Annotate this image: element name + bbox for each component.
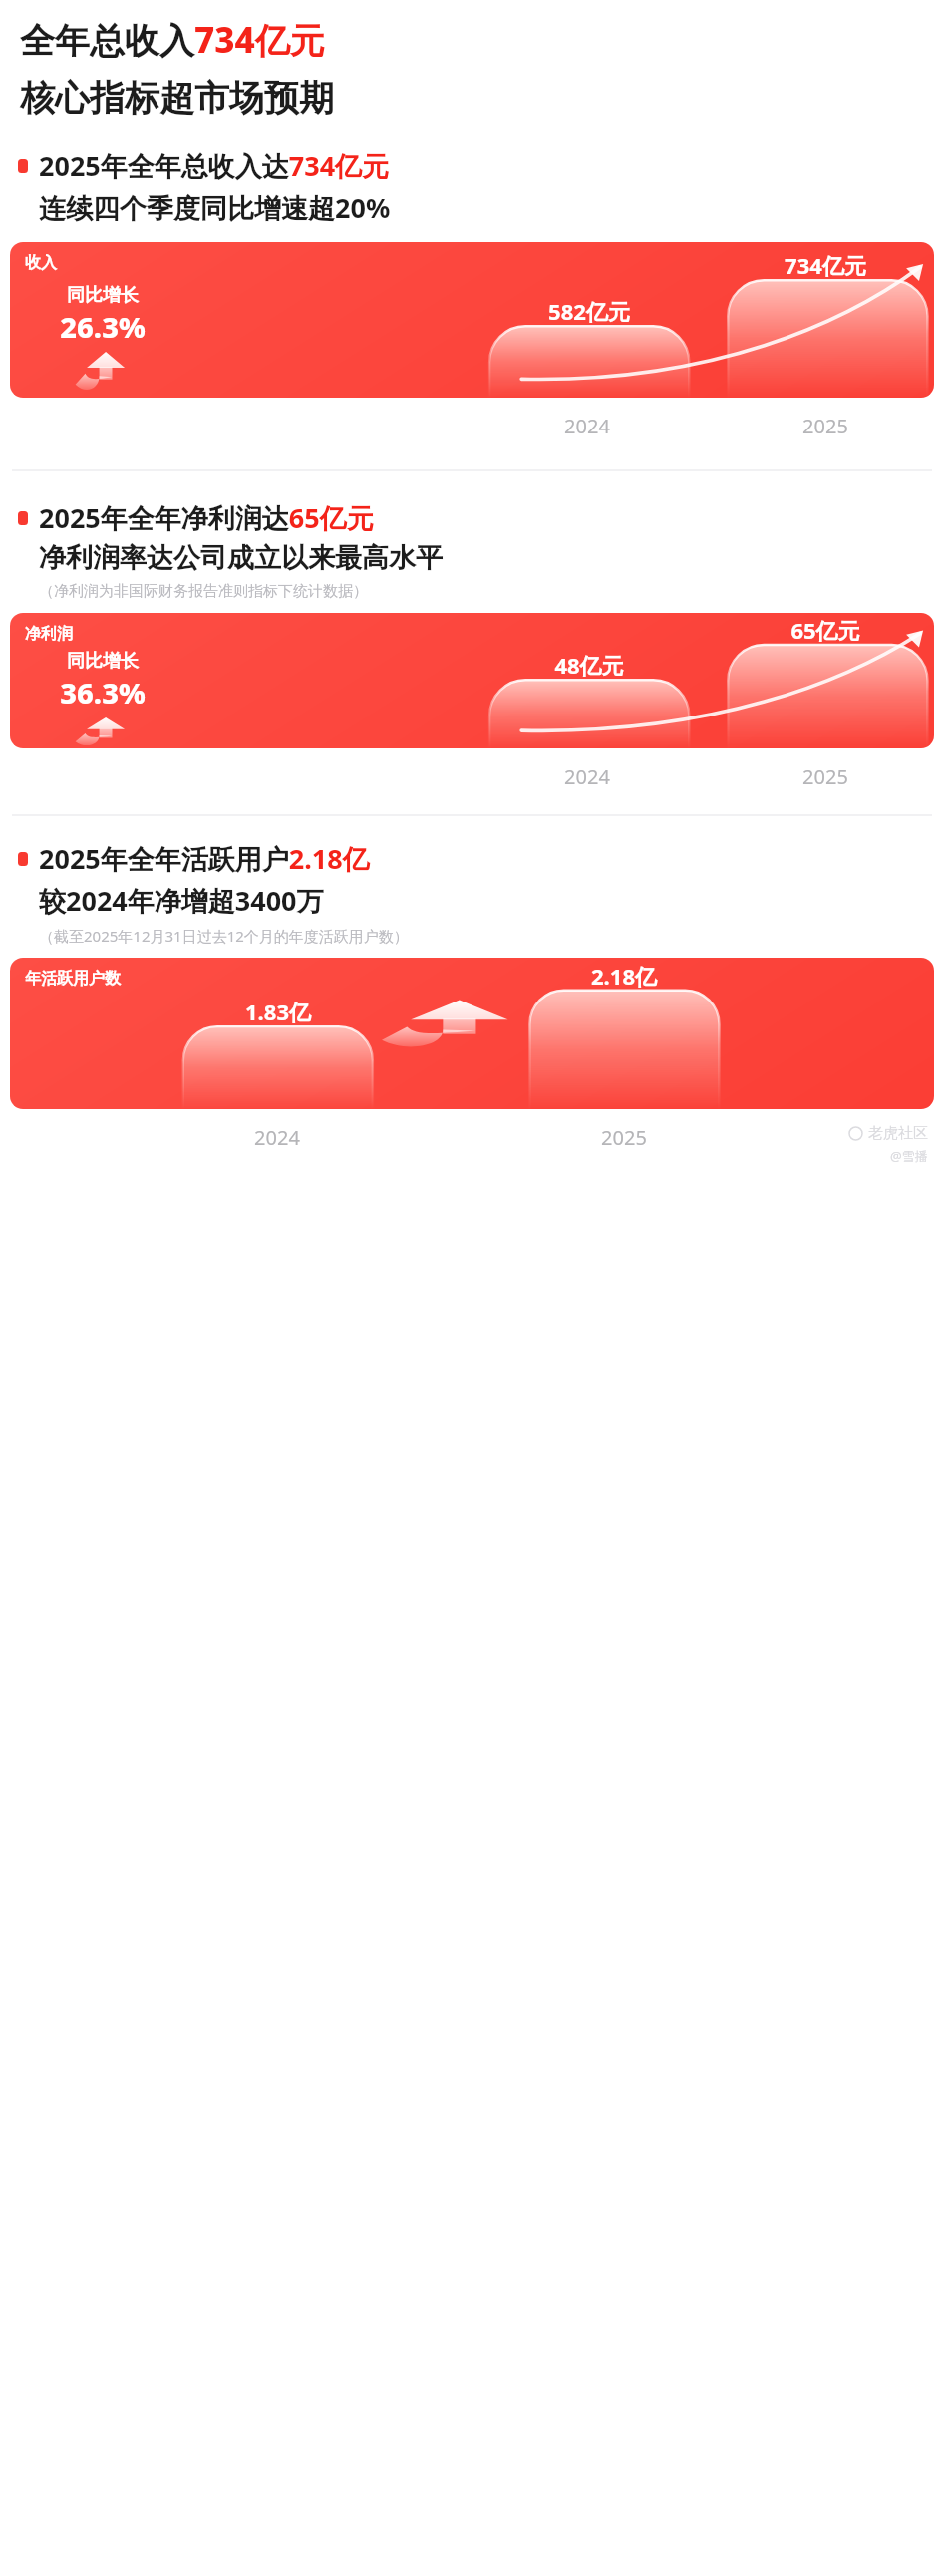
- staticText: 核心指标超市场预期: [20, 76, 334, 120]
- staticText: @雪播: [890, 1147, 928, 1165]
- staticText: 2025年全年净利润达65亿元: [39, 499, 374, 536]
- staticText: 65亿元: [726, 615, 925, 645]
- other: 老虎社区: [848, 1124, 928, 1165]
- staticText: （净利润为非国际财务报告准则指标下统计数据）: [39, 582, 368, 601]
- staticText: 老虎社区: [868, 1124, 928, 1143]
- staticText: 同比增长: [67, 650, 139, 673]
- staticText: 净利润: [25, 624, 73, 644]
- button[interactable]: 年活跃用户数: [10, 958, 934, 1109]
- staticText: 同比增长: [67, 284, 139, 307]
- staticText: 734亿元: [726, 250, 925, 280]
- staticText: 1.83亿: [183, 997, 373, 1026]
- button[interactable]: 2025年全年总收入达734亿元: [0, 147, 944, 226]
- staticText: 2025: [726, 763, 925, 790]
- staticText: 2024: [487, 413, 687, 439]
- staticText: 2024: [487, 763, 687, 790]
- staticText: 26.3%: [60, 307, 146, 346]
- button[interactable]: 收入: [10, 242, 934, 398]
- staticText: 2025: [726, 413, 925, 439]
- staticText: 较2024年净增超3400万: [39, 882, 324, 919]
- staticText: 收入: [25, 253, 57, 273]
- button[interactable]: 2025年全年净利润达65亿元: [0, 499, 944, 601]
- staticText: 582亿元: [489, 296, 689, 326]
- staticText: （截至2025年12月31日过去12个月的年度活跃用户数）: [39, 926, 409, 946]
- staticText: 2.18亿: [529, 961, 719, 991]
- staticText: 36.3%: [60, 673, 146, 712]
- staticText: 2025年全年活跃用户2.18亿: [39, 840, 370, 877]
- staticText: 2025年全年总收入达734亿元: [39, 147, 390, 184]
- staticText: 2024: [182, 1124, 372, 1151]
- staticText: 2025: [529, 1124, 719, 1151]
- button[interactable]: 2025年全年活跃用户2.18亿: [0, 840, 944, 946]
- staticText: 年活跃用户数: [25, 969, 121, 989]
- staticText: 48亿元: [489, 650, 689, 680]
- staticText: 连续四个季度同比增速超20%: [39, 189, 391, 226]
- staticText: 净利润率达公司成立以来最高水平: [39, 541, 443, 575]
- staticText: 全年总收入734亿元: [20, 16, 325, 64]
- button[interactable]: 净利润: [10, 613, 934, 748]
